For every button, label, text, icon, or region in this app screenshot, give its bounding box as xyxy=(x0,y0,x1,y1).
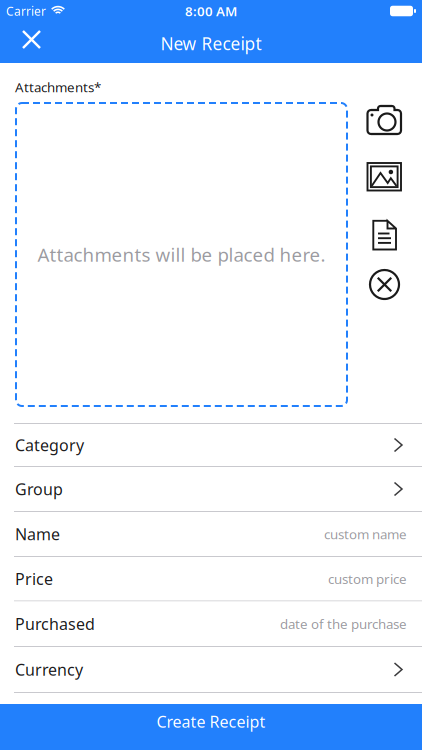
button[interactable]: Name xyxy=(0,512,422,556)
staticText: Currency xyxy=(15,659,83,680)
staticText: Carrier xyxy=(6,3,46,19)
button[interactable]: Clear attachments xyxy=(370,270,399,299)
staticText: custom name xyxy=(324,525,407,543)
staticText: Create Receipt xyxy=(156,711,265,732)
button[interactable]: Price xyxy=(0,557,422,600)
staticText: New Receipt xyxy=(160,32,261,55)
button[interactable]: Category xyxy=(0,424,422,466)
staticText: Category xyxy=(15,434,84,456)
staticText: Price xyxy=(15,568,53,589)
staticText: Purchased xyxy=(15,613,95,634)
staticText: custom price xyxy=(328,570,407,588)
button[interactable]: Attach document xyxy=(372,220,396,250)
staticText: date of the purchase xyxy=(280,615,407,633)
staticText: Attachments will be placed here. xyxy=(37,242,325,267)
staticText: 8:00 AM xyxy=(185,2,237,20)
staticText: Attachments* xyxy=(15,78,101,96)
button[interactable]: Choose photo xyxy=(366,162,402,192)
staticText: Group xyxy=(15,478,63,500)
button[interactable]: Group xyxy=(0,467,422,511)
staticText: Name xyxy=(15,523,60,545)
button[interactable]: Purchased xyxy=(0,601,422,646)
button[interactable]: Currency xyxy=(0,647,422,692)
button[interactable]: Take photo xyxy=(366,105,402,135)
button[interactable]: Close xyxy=(0,22,52,63)
button[interactable]: Create Receipt xyxy=(0,704,422,750)
